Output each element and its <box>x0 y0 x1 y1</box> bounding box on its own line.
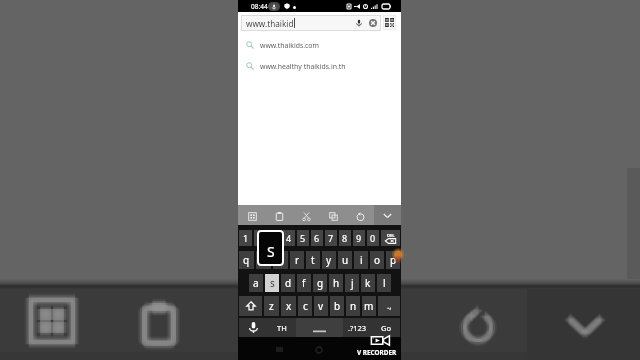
button[interactable]: z <box>264 296 279 316</box>
button[interactable]: 1 <box>239 230 252 246</box>
staticText: S <box>267 242 275 261</box>
staticText: 6 <box>314 232 320 244</box>
button[interactable]: 6 <box>311 230 323 246</box>
staticText: i <box>360 253 363 267</box>
button[interactable]: 8 <box>339 230 351 246</box>
staticText: d <box>285 276 292 290</box>
staticText: z <box>269 299 274 313</box>
staticText: .?123 <box>348 323 367 333</box>
button[interactable]: w <box>256 251 271 269</box>
staticText: ., <box>387 300 392 312</box>
button[interactable]: g <box>313 274 327 292</box>
button[interactable]: p <box>386 251 400 269</box>
button[interactable]: t <box>306 251 320 269</box>
staticText: a <box>253 276 259 290</box>
button[interactable]: e <box>273 251 288 269</box>
button[interactable]: c <box>298 296 312 316</box>
button[interactable]: www.thaikids.com <box>238 35 401 55</box>
button[interactable]: 4 <box>283 230 295 246</box>
button[interactable]: Cut <box>293 205 320 225</box>
staticText: t <box>311 253 315 267</box>
button[interactable]: Copy <box>320 205 347 225</box>
button[interactable]: Voice search <box>355 19 363 27</box>
button[interactable]: x <box>281 296 296 316</box>
button[interactable]: Clear query <box>369 19 377 27</box>
staticText: 5 <box>300 232 306 244</box>
button[interactable]: www.thaikid <box>241 15 381 31</box>
button[interactable]: y <box>322 251 336 269</box>
staticText: q <box>243 253 250 267</box>
staticText: v <box>318 299 324 313</box>
button[interactable]: h <box>329 274 343 292</box>
staticText: w <box>260 253 268 267</box>
button[interactable]: 5 <box>297 230 309 246</box>
button[interactable]: s <box>265 274 279 292</box>
button[interactable]: 7 <box>325 230 337 246</box>
button[interactable]: d <box>281 274 295 292</box>
button[interactable]: Scan QR code <box>383 15 396 30</box>
staticText: l <box>383 276 386 290</box>
button[interactable]: l <box>377 274 391 292</box>
staticText: x <box>286 299 292 313</box>
staticText: p <box>390 253 397 267</box>
staticText: s <box>270 276 275 290</box>
button[interactable]: 9 <box>353 230 365 246</box>
button[interactable]: u <box>338 251 352 269</box>
button[interactable]: a <box>249 274 263 292</box>
staticText: TH <box>277 323 287 333</box>
button[interactable]: i <box>354 251 368 269</box>
staticText: 2 <box>258 232 264 244</box>
staticText: 8 <box>342 232 348 244</box>
button[interactable]: ., <box>378 296 400 316</box>
staticText: Go <box>381 323 391 333</box>
staticText: e <box>278 253 284 267</box>
staticText: m <box>364 299 374 313</box>
button[interactable]: TH <box>268 318 296 337</box>
staticText: DEL <box>387 233 395 238</box>
staticText: u <box>342 253 349 267</box>
staticText: b <box>334 299 341 313</box>
staticText: g <box>317 276 324 290</box>
button[interactable]: www.healthy thaikids.in.th <box>238 56 401 76</box>
staticText: 1 <box>243 232 249 244</box>
button[interactable]: Undo <box>347 205 374 225</box>
button[interactable]: 0 <box>367 230 379 246</box>
staticText: c <box>303 299 308 313</box>
staticText: 0 <box>370 232 376 244</box>
staticText: n <box>350 299 357 313</box>
staticText: 08:44 <box>251 2 268 11</box>
button[interactable]: m <box>362 296 376 316</box>
staticText: k <box>365 276 371 290</box>
button[interactable]: j <box>345 274 359 292</box>
button[interactable]: Recent apps <box>273 343 286 356</box>
button[interactable]: o <box>370 251 384 269</box>
button[interactable]: Shift <box>239 296 262 316</box>
staticText: y <box>326 253 332 267</box>
staticText: 7 <box>328 232 334 244</box>
button[interactable]: b <box>330 296 344 316</box>
button[interactable]: v <box>314 296 328 316</box>
button[interactable]: .?123 <box>343 318 371 337</box>
button[interactable]: f <box>297 274 311 292</box>
staticText: o <box>374 253 381 267</box>
button[interactable]: r <box>290 251 304 269</box>
button[interactable]: 3 <box>269 230 281 246</box>
button[interactable]: Voice input <box>239 318 268 337</box>
button[interactable]: Clipboard <box>266 205 293 225</box>
staticText: f <box>302 276 306 290</box>
button[interactable]: k <box>361 274 375 292</box>
staticText: V RECORDER <box>357 348 397 357</box>
button[interactable]: 2 <box>254 230 267 246</box>
button[interactable]: n <box>346 296 360 316</box>
button[interactable]: Home <box>312 343 325 356</box>
button[interactable]: Hide keyboard <box>374 205 401 225</box>
staticText: r <box>295 253 300 267</box>
button[interactable]: Go <box>371 318 400 337</box>
button[interactable]: Delete <box>381 230 400 246</box>
button[interactable]: Space <box>296 318 343 337</box>
staticText: 9 <box>356 232 362 244</box>
button[interactable]: Apps <box>238 205 266 225</box>
button[interactable]: q <box>239 251 254 269</box>
staticText: 4 <box>286 232 292 244</box>
